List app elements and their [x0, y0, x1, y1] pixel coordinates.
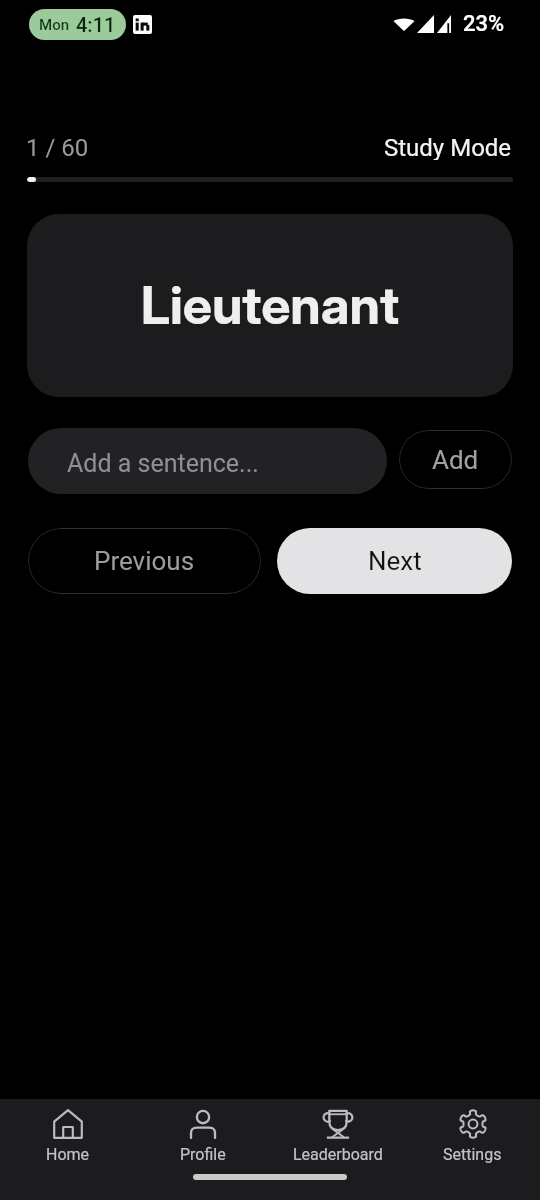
other: Settings	[458, 1109, 488, 1139]
button[interactable]: Leaderboard	[270, 1103, 405, 1170]
staticText: Next	[368, 546, 422, 576]
button[interactable]: Previous	[28, 528, 261, 594]
button[interactable]: Lieutenant	[27, 214, 513, 397]
staticText: 1 / 60	[26, 134, 89, 160]
button[interactable]: Add	[399, 430, 512, 489]
staticText: Add	[432, 445, 479, 475]
staticText: Previous	[94, 546, 195, 576]
staticText: Lieutenant	[141, 274, 400, 337]
staticText: Home	[46, 1145, 90, 1164]
button[interactable]: Add a sentence...	[67, 428, 367, 494]
button[interactable]: Next	[277, 528, 512, 594]
staticText: 23%	[463, 11, 505, 37]
button[interactable]: Home	[0, 1103, 135, 1170]
staticText: Add a sentence...	[67, 449, 259, 478]
other: Home	[53, 1109, 83, 1139]
staticText: 4:11	[76, 13, 116, 36]
staticText: Settings	[443, 1145, 502, 1164]
other: Leaderboard	[323, 1109, 353, 1139]
button[interactable]: Settings	[405, 1103, 540, 1170]
staticText: Profile	[180, 1145, 226, 1164]
staticText: Mon	[39, 16, 70, 34]
staticText: Study Mode	[384, 134, 512, 160]
staticText: Leaderboard	[293, 1145, 383, 1164]
other: Profile	[188, 1109, 218, 1139]
button[interactable]: Profile	[135, 1103, 270, 1170]
